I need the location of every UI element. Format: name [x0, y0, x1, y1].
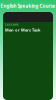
staticText: English Speaking Course	[0, 3, 55, 9]
staticText: Man or Mars Task	[5, 27, 40, 33]
staticText: Lessons	[5, 22, 19, 27]
